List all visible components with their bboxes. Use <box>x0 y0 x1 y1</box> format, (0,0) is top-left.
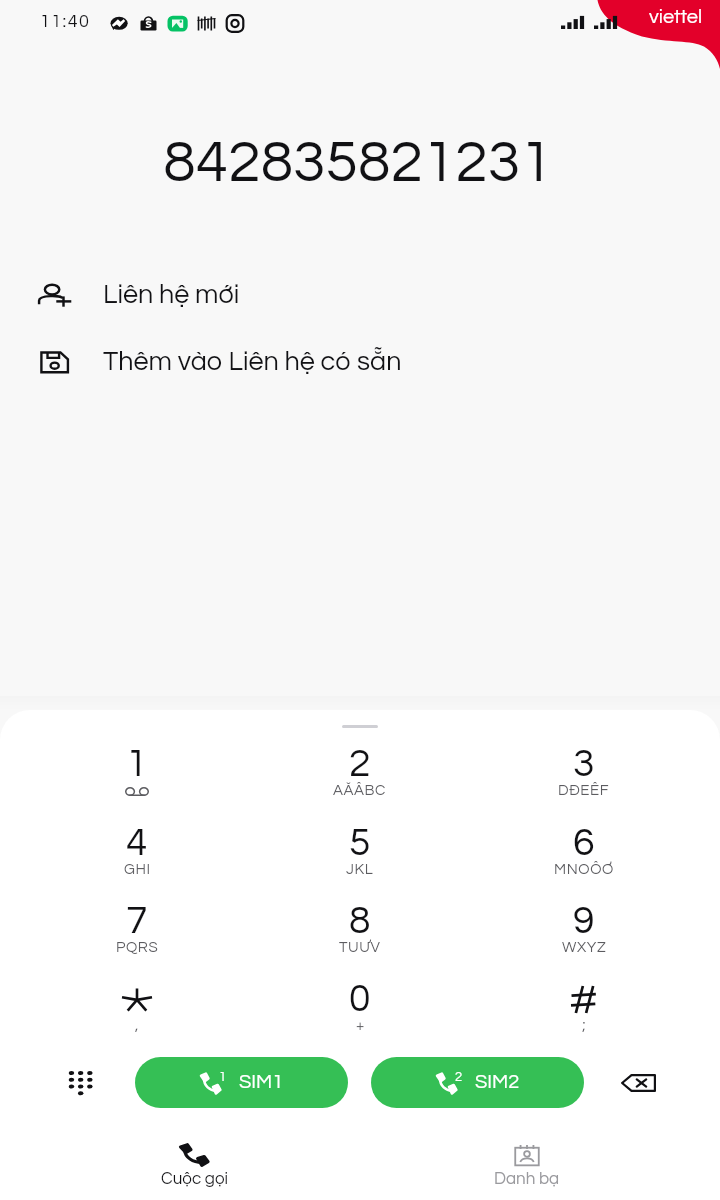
button[interactable]: 1 <box>135 1057 348 1108</box>
button[interactable]: Show dialpad <box>57 1059 105 1107</box>
staticText: SIM2 <box>475 1072 520 1093</box>
staticText: Cuộc gọi <box>161 1170 228 1188</box>
staticText: 1 <box>126 744 148 784</box>
staticText: 3 <box>573 744 595 784</box>
button[interactable]: , <box>26 963 248 1041</box>
button[interactable]: Thêm vào Liên hệ có sẵn <box>0 336 720 388</box>
staticText: 0 <box>349 979 371 1019</box>
staticText: 9 <box>573 901 595 941</box>
staticText: PQRS <box>116 940 159 955</box>
button[interactable]: 8 <box>249 885 471 963</box>
button[interactable]: 2 <box>249 728 471 806</box>
staticText: JKL <box>346 862 374 877</box>
button[interactable]: Liên hệ mới <box>0 269 720 321</box>
staticText: TUƯV <box>339 940 381 955</box>
staticText: MNOÔƠ <box>554 862 614 877</box>
staticText: Liên hệ mới <box>103 281 240 309</box>
staticText: ; <box>582 1018 587 1033</box>
staticText: 4 <box>126 823 148 863</box>
staticText: DĐEÊF <box>558 783 610 798</box>
button[interactable]: 7 <box>26 885 248 963</box>
button[interactable]: 2 <box>371 1057 584 1108</box>
staticText: 11:40 <box>40 12 91 31</box>
button[interactable]: Backspace <box>614 1059 662 1107</box>
staticText: 2 <box>349 744 371 784</box>
staticText: 7 <box>126 901 148 941</box>
button[interactable]: 5 <box>249 807 471 885</box>
button[interactable]: Danh bạ <box>467 1138 587 1200</box>
button[interactable]: 6 <box>473 807 695 885</box>
staticText: WXYZ <box>562 940 607 955</box>
button[interactable]: 1 <box>26 728 248 806</box>
staticText: 842835821231 <box>163 133 553 193</box>
button[interactable]: 9 <box>473 885 695 963</box>
staticText: 2 <box>455 1070 463 1083</box>
staticText: SIM1 <box>239 1072 284 1093</box>
button[interactable]: 3 <box>473 728 695 806</box>
staticText: AĂÂBC <box>333 783 387 798</box>
button[interactable]: Cuộc gọi <box>134 1138 254 1200</box>
button[interactable]: 0 <box>249 963 471 1041</box>
button[interactable]: ; <box>473 963 695 1041</box>
staticText: Thêm vào Liên hệ có sẵn <box>103 348 402 376</box>
staticText: GHI <box>124 862 151 877</box>
staticText: 6 <box>573 823 595 863</box>
staticText: Danh bạ <box>494 1170 560 1188</box>
staticText: 8 <box>349 901 371 941</box>
staticText: + <box>356 1018 365 1033</box>
staticText: , <box>135 1018 139 1033</box>
staticText: 1 <box>219 1070 227 1083</box>
staticText: 5 <box>349 823 371 863</box>
staticText: viettel <box>649 7 703 28</box>
button[interactable]: 4 <box>26 807 248 885</box>
